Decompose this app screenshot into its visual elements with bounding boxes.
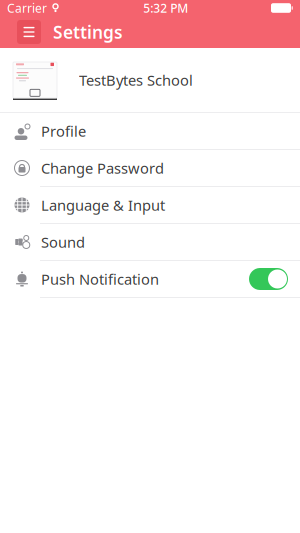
button[interactable]: Push Notification [0, 261, 300, 297]
staticText: Language & Input [41, 195, 165, 215]
staticText: Sound [41, 232, 85, 252]
button[interactable]: Menu [17, 20, 41, 44]
button[interactable]: TestBytes School [0, 48, 300, 112]
staticText: 5:32 PM [143, 0, 188, 16]
staticText: Change Password [41, 158, 164, 178]
staticText: Settings [53, 20, 123, 43]
staticText: Profile [41, 121, 86, 141]
staticText: Push Notification [41, 269, 159, 289]
staticText: Carrier [7, 0, 47, 16]
staticText: TestBytes School [79, 70, 193, 90]
button[interactable]: Language & Input [0, 187, 300, 223]
button[interactable]: Sound [0, 224, 300, 260]
button[interactable]: Change Password [0, 150, 300, 186]
button[interactable]: Profile [0, 113, 300, 149]
